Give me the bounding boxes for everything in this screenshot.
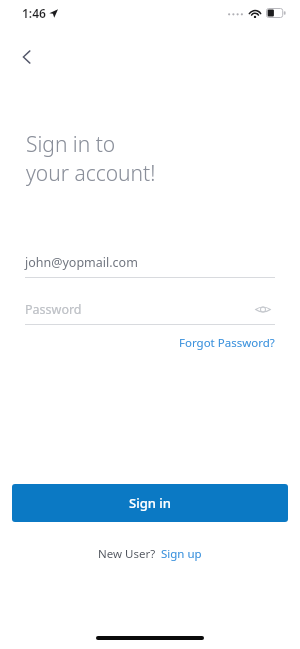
staticText: New User? xyxy=(98,546,156,562)
staticText: Password xyxy=(25,301,82,318)
button[interactable]: Back xyxy=(10,40,44,74)
button[interactable]: john@yopmail.com xyxy=(25,250,275,274)
button[interactable]: Forgot Password? xyxy=(179,333,275,353)
staticText: your account! xyxy=(26,159,156,188)
staticText: Sign in to xyxy=(26,130,116,159)
button[interactable]: Sign up xyxy=(161,544,202,564)
button[interactable]: Show password xyxy=(251,297,275,321)
button[interactable]: Password xyxy=(25,297,275,321)
button[interactable]: Sign in xyxy=(12,484,288,522)
staticText: Forgot Password? xyxy=(179,335,275,351)
staticText: Sign up xyxy=(161,546,202,562)
staticText: john@yopmail.com xyxy=(25,254,138,271)
staticText: 1:46 xyxy=(22,5,46,21)
staticText: Sign in xyxy=(129,494,171,512)
